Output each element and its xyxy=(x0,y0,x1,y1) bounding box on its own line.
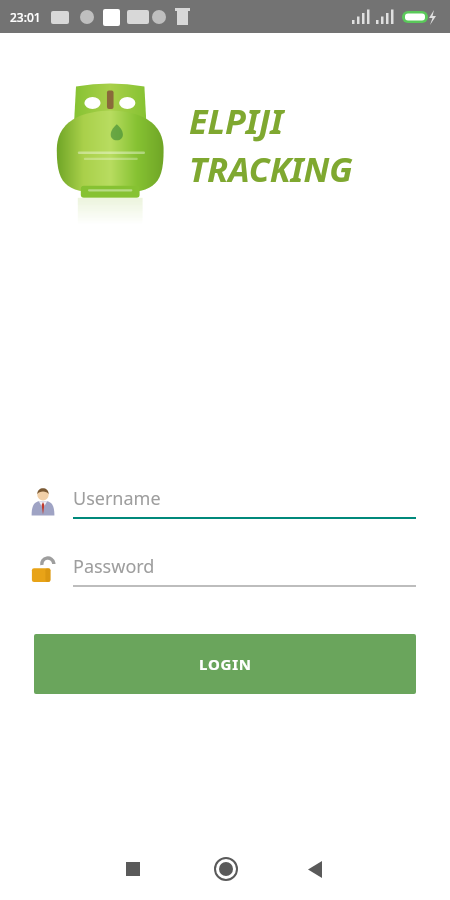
other: Password xyxy=(28,555,58,585)
button[interactable]: Recents xyxy=(118,854,148,884)
staticText: 23:01 xyxy=(10,9,41,25)
button[interactable]: Back xyxy=(300,854,330,884)
button[interactable]: LOGIN xyxy=(34,634,416,694)
staticText: Password xyxy=(73,554,155,579)
staticText: Username xyxy=(73,486,161,511)
staticText: LOGIN xyxy=(199,654,252,674)
other: User xyxy=(28,487,58,517)
button[interactable]: Password xyxy=(28,548,416,592)
button[interactable]: Home xyxy=(209,852,243,886)
staticText: TRACKING xyxy=(189,146,353,192)
button[interactable]: User xyxy=(28,480,416,524)
staticText: ELPIJI xyxy=(189,98,284,144)
